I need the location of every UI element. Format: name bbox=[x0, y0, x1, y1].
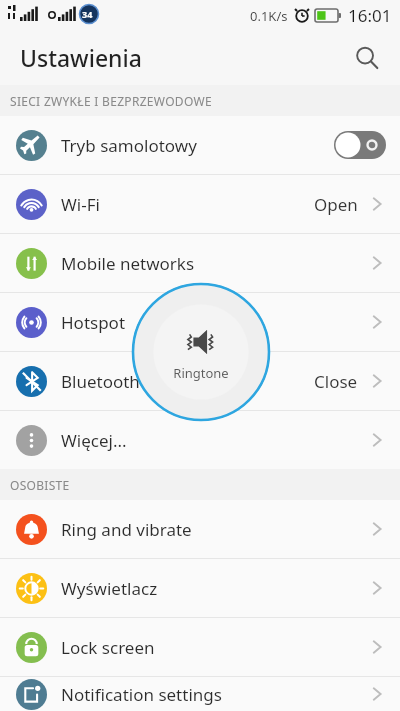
button[interactable]: Search bbox=[344, 35, 390, 81]
button[interactable]: Tryb samolotowy bbox=[0, 116, 400, 175]
staticText: SIECI ZWYKŁE I BEZPRZEWODOWE bbox=[10, 93, 212, 109]
staticText: Wi-Fi bbox=[61, 193, 314, 216]
staticText: Close bbox=[314, 370, 358, 393]
button[interactable]: Notification settings bbox=[0, 677, 400, 711]
button[interactable]: Ring and vibrate bbox=[0, 500, 400, 559]
button[interactable]: Wi-Fi bbox=[0, 175, 400, 234]
staticText: 34 bbox=[82, 8, 93, 20]
staticText: Tryb samolotowy bbox=[61, 134, 334, 157]
staticText: Hotspot bbox=[61, 311, 368, 334]
button[interactable]: Mobile networks bbox=[0, 234, 400, 293]
staticText: 0.1K/s bbox=[250, 7, 288, 25]
button[interactable]: Wyświetlacz bbox=[0, 559, 400, 618]
staticText: Bluetooth bbox=[61, 370, 314, 393]
staticText: Lock screen bbox=[61, 636, 368, 659]
staticText: Więcej... bbox=[61, 429, 368, 452]
staticText: 16:01 bbox=[348, 4, 392, 27]
button[interactable]: Ringtone mode bbox=[131, 282, 271, 422]
button[interactable]: Lock screen bbox=[0, 618, 400, 677]
staticText: Ringtone bbox=[173, 364, 229, 382]
staticText: Mobile networks bbox=[61, 252, 368, 275]
button[interactable]: Hotspot bbox=[0, 293, 400, 352]
button[interactable]: Więcej... bbox=[0, 411, 400, 469]
staticText: Notification settings bbox=[61, 683, 368, 706]
staticText: Ustawienia bbox=[20, 42, 142, 73]
staticText: Open bbox=[314, 193, 358, 216]
button[interactable]: Bluetooth bbox=[0, 352, 400, 411]
staticText: OSOBISTE bbox=[10, 477, 70, 493]
button[interactable]: Airplane mode toggle bbox=[334, 131, 386, 159]
staticText: Ring and vibrate bbox=[61, 518, 368, 541]
staticText: Wyświetlacz bbox=[61, 577, 368, 600]
